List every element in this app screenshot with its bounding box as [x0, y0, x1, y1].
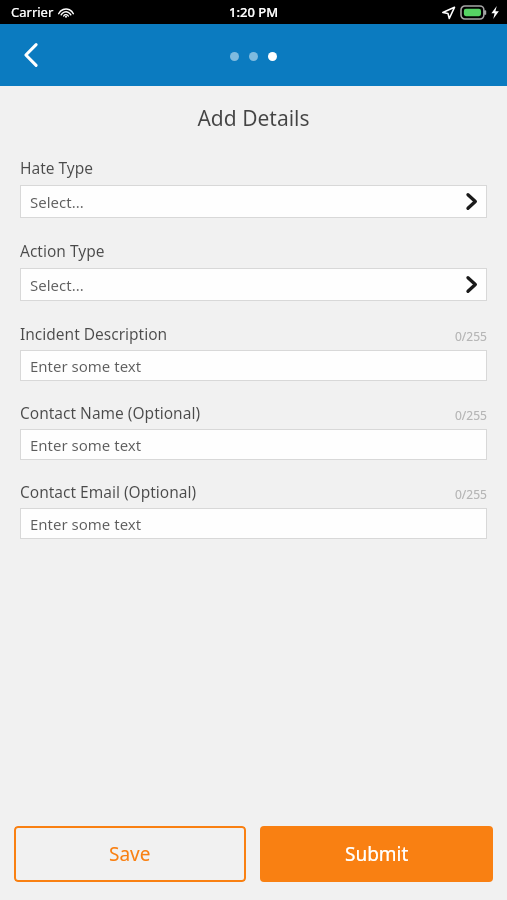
button[interactable]: Submit — [260, 826, 493, 882]
button[interactable]: Enter some text — [20, 508, 487, 539]
staticText: 0/255 — [455, 407, 487, 423]
staticText: Select... — [30, 275, 84, 295]
button[interactable]: Save — [14, 826, 246, 882]
button[interactable]: Select... — [20, 185, 487, 218]
button[interactable]: Enter some text — [20, 429, 487, 460]
button[interactable]: Select... — [20, 268, 487, 301]
staticText: Carrier — [11, 3, 54, 21]
staticText: Action Type — [20, 240, 105, 261]
staticText: Hate Type — [20, 157, 94, 178]
staticText: Enter some text — [30, 356, 142, 376]
staticText: Submit — [345, 841, 409, 867]
staticText: Enter some text — [30, 514, 142, 534]
staticText: Save — [109, 841, 151, 867]
staticText: Select... — [30, 192, 84, 212]
staticText: Contact Email (Optional) — [20, 481, 197, 502]
staticText: Add Details — [20, 104, 487, 133]
staticText: 0/255 — [455, 328, 487, 344]
button[interactable]: Enter some text — [20, 350, 487, 381]
staticText: 1:20 PM — [229, 3, 279, 21]
staticText: Incident Description — [20, 323, 168, 344]
button[interactable]: Back — [8, 32, 54, 78]
staticText: Enter some text — [30, 435, 142, 455]
staticText: Contact Name (Optional) — [20, 402, 201, 423]
staticText: 0/255 — [455, 486, 487, 502]
